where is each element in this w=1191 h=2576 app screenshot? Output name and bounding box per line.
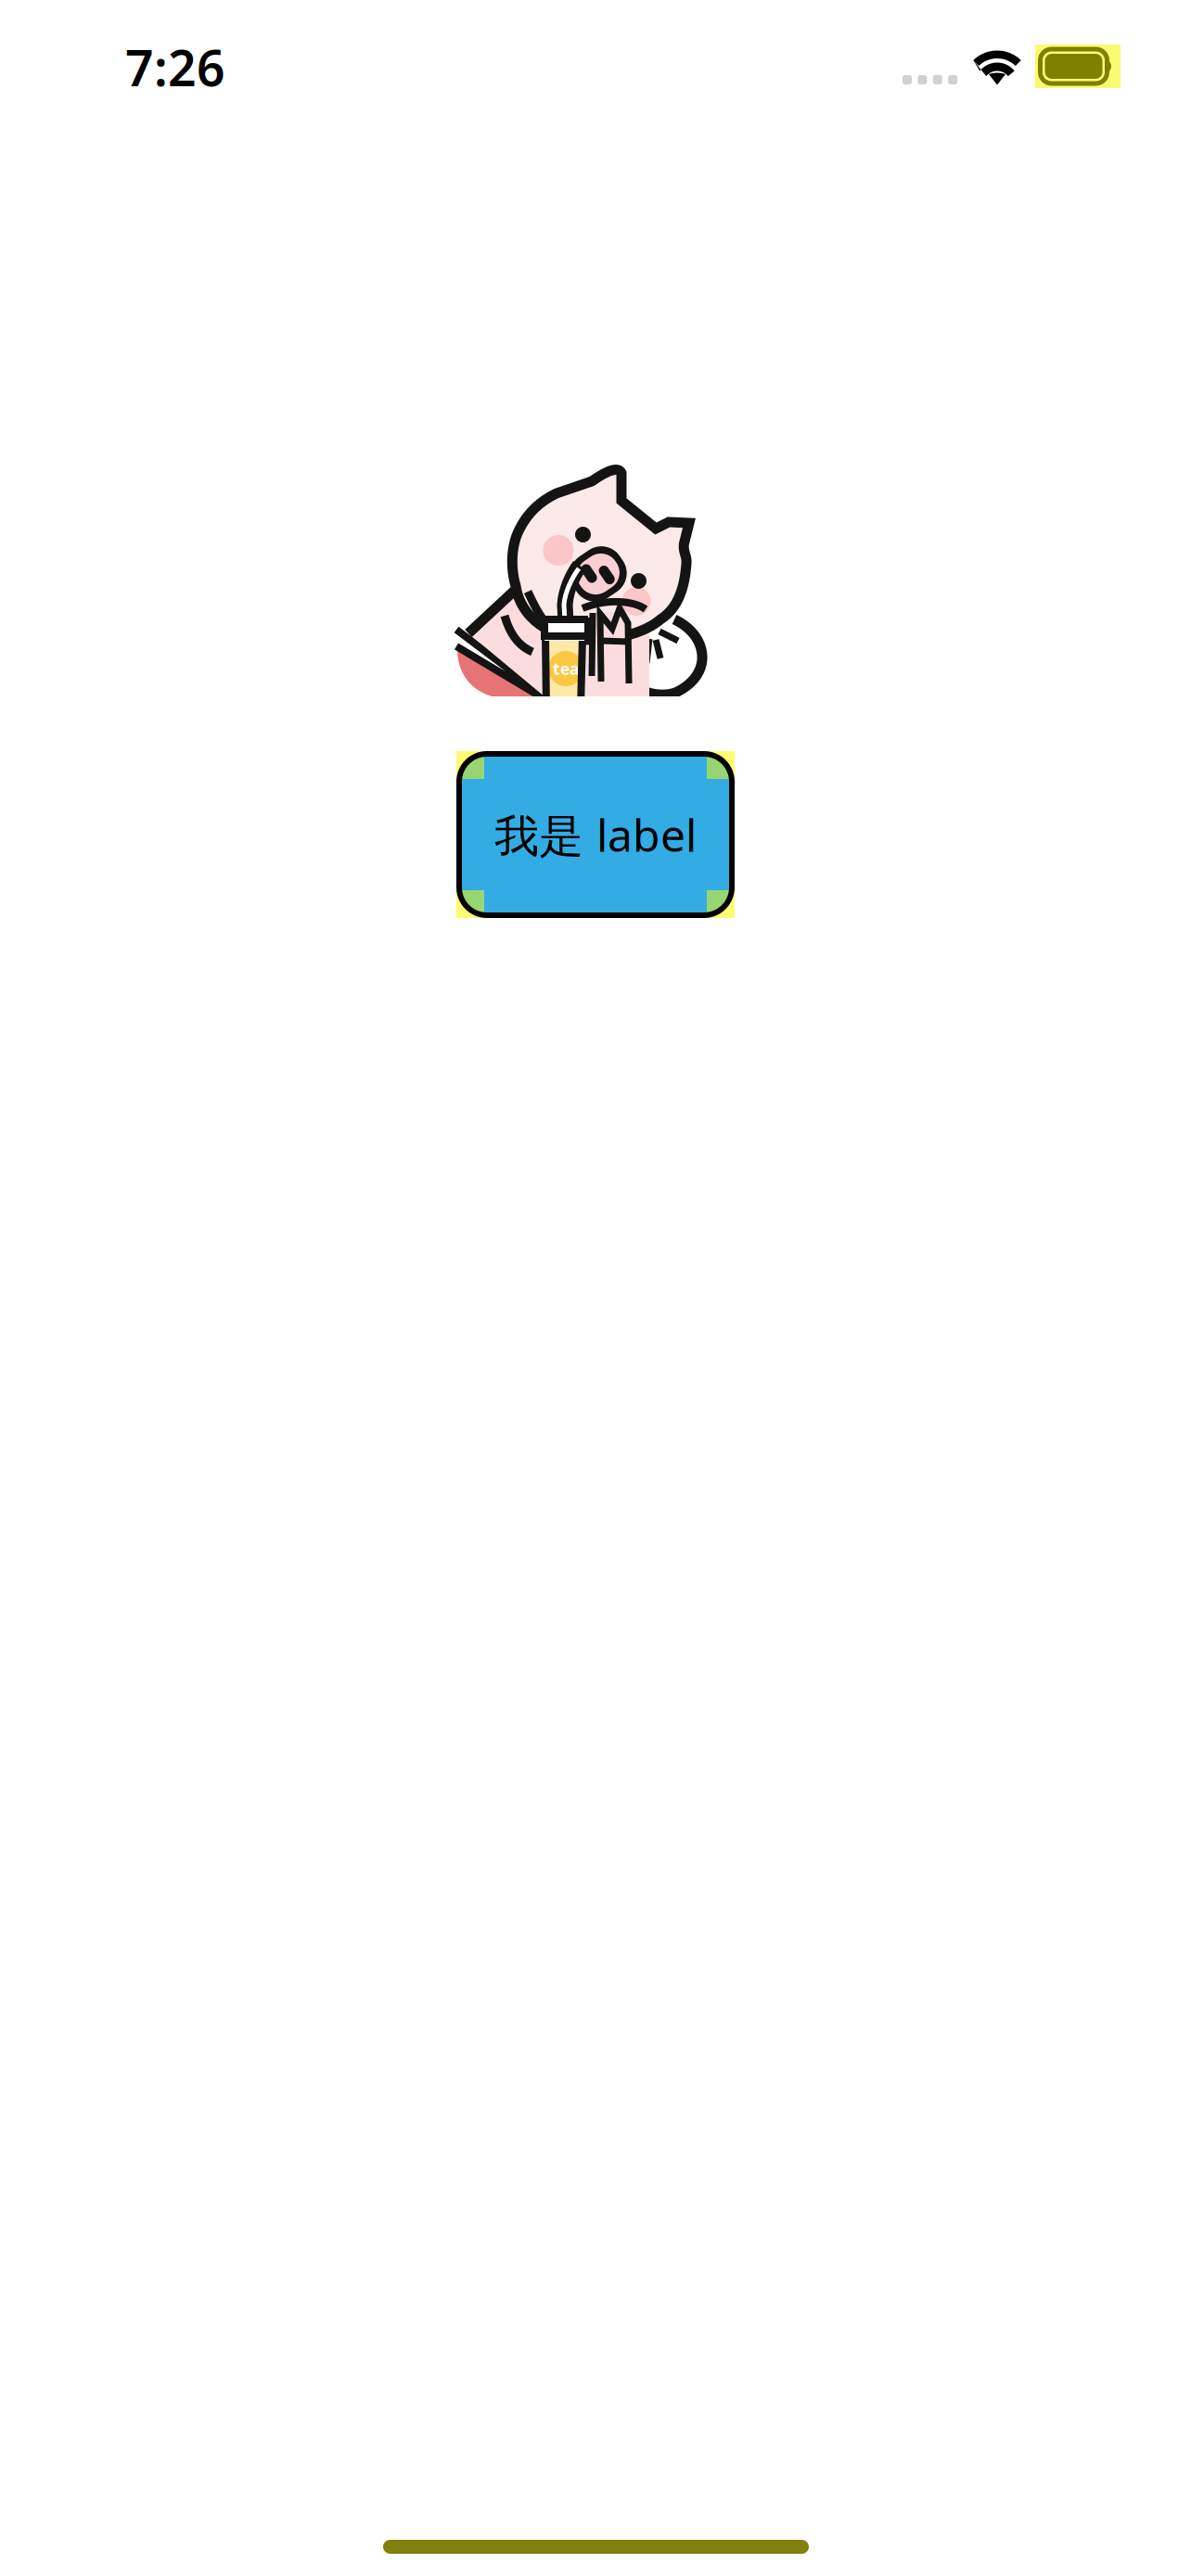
- button[interactable]: 我是 label: [456, 751, 735, 918]
- staticText: 我是 label: [494, 805, 697, 864]
- staticText: 7:26: [125, 34, 225, 100]
- staticText: tea: [553, 658, 579, 679]
